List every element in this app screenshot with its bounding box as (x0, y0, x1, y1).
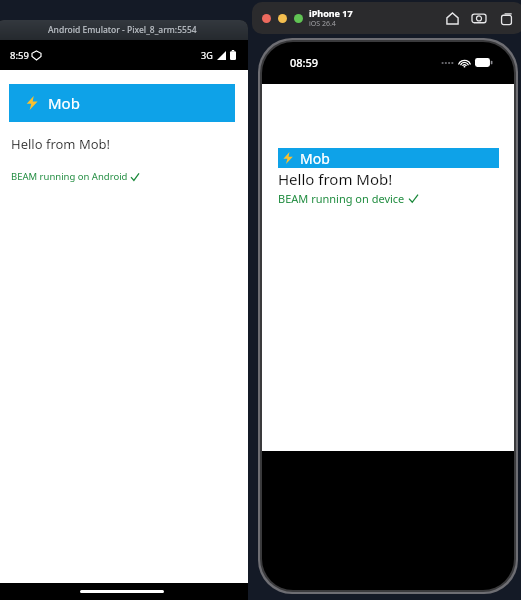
staticText: BEAM running on Android (11, 170, 128, 183)
button[interactable]: Maximize (294, 14, 303, 23)
staticText: Mob (300, 149, 330, 168)
staticText: iPhone 17 (309, 7, 353, 19)
button[interactable]: Rotate (498, 10, 514, 26)
staticText: 08:59 (290, 55, 319, 70)
staticText: Mob (48, 93, 80, 113)
button[interactable]: Mob (278, 148, 499, 168)
staticText: Hello from Mob! (278, 169, 393, 189)
staticText: Android Emulator - Pixel_8_arm:5554 (48, 24, 197, 36)
button[interactable]: Mob (9, 84, 235, 122)
button[interactable]: Home (444, 10, 460, 26)
staticText: iOS 26.4 (309, 19, 336, 29)
button[interactable]: Minimize (278, 14, 287, 23)
button[interactable]: Close (262, 14, 271, 23)
staticText: BEAM running on device (278, 191, 405, 206)
staticText: 3G (201, 49, 213, 61)
staticText: Hello from Mob! (11, 135, 111, 153)
staticText: 8:59 (10, 49, 29, 62)
button[interactable]: Screenshot (471, 10, 487, 26)
